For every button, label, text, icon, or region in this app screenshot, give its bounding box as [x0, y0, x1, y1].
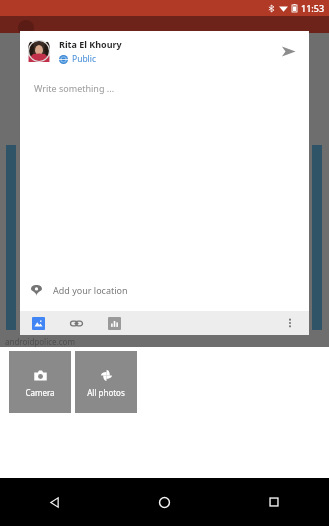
staticText: All photos — [87, 387, 125, 398]
button[interactable]: All photos — [75, 351, 137, 413]
button[interactable]: Send post — [273, 36, 303, 66]
button[interactable]: Add photo — [28, 313, 48, 333]
button[interactable]: Write something ... — [20, 71, 309, 275]
button[interactable]: Add your location — [20, 275, 309, 305]
staticText: androidpolice.com — [5, 336, 75, 347]
button[interactable]: Recents — [219, 478, 329, 526]
button[interactable]: Back — [0, 478, 109, 526]
staticText: Write something ... — [34, 82, 115, 94]
button[interactable]: Add link — [66, 313, 86, 333]
button[interactable]: Add poll — [104, 313, 124, 333]
button[interactable]: More options — [279, 312, 301, 334]
staticText: Camera — [25, 387, 55, 398]
button[interactable]: Home — [109, 478, 219, 526]
button[interactable]: Camera — [9, 351, 71, 413]
staticText: Add your location — [53, 284, 128, 296]
staticText: 11:53 — [301, 2, 325, 14]
staticText: Public — [72, 53, 97, 65]
staticText: Rita El Khoury — [59, 38, 122, 50]
